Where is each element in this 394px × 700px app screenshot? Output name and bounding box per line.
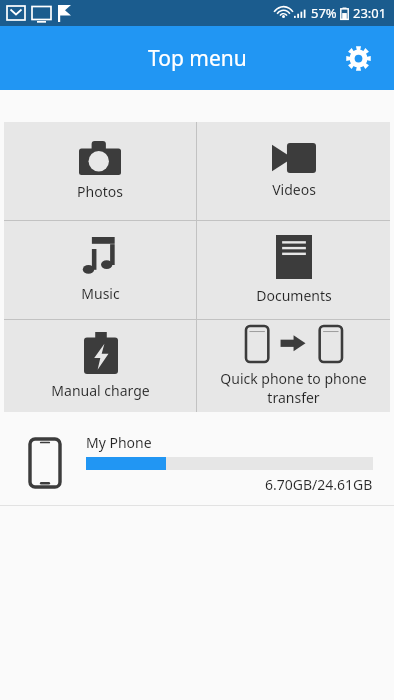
staticText: Music (81, 284, 120, 303)
staticText: 6.70GB/24.61GB (265, 475, 373, 494)
button[interactable]: My Phone (0, 430, 394, 496)
staticText: Videos (272, 180, 316, 199)
button[interactable]: Documents (197, 221, 390, 319)
staticText: Quick phone to phone transfer (220, 369, 367, 407)
staticText: Manual charge (51, 381, 150, 400)
button[interactable]: Manual charge (4, 320, 196, 412)
staticText: 23:01 (353, 4, 387, 22)
staticText: Photos (77, 182, 123, 201)
button[interactable]: Videos (197, 122, 390, 220)
staticText: Top menu (148, 44, 247, 73)
staticText: 57% (311, 4, 337, 22)
button[interactable]: Settings (338, 38, 378, 78)
button[interactable]: Photos (4, 122, 196, 220)
button[interactable]: Quick phone to phone transfer (197, 320, 390, 412)
button[interactable]: Music (4, 221, 196, 319)
staticText: Documents (256, 286, 332, 305)
staticText: My Phone (86, 433, 152, 452)
